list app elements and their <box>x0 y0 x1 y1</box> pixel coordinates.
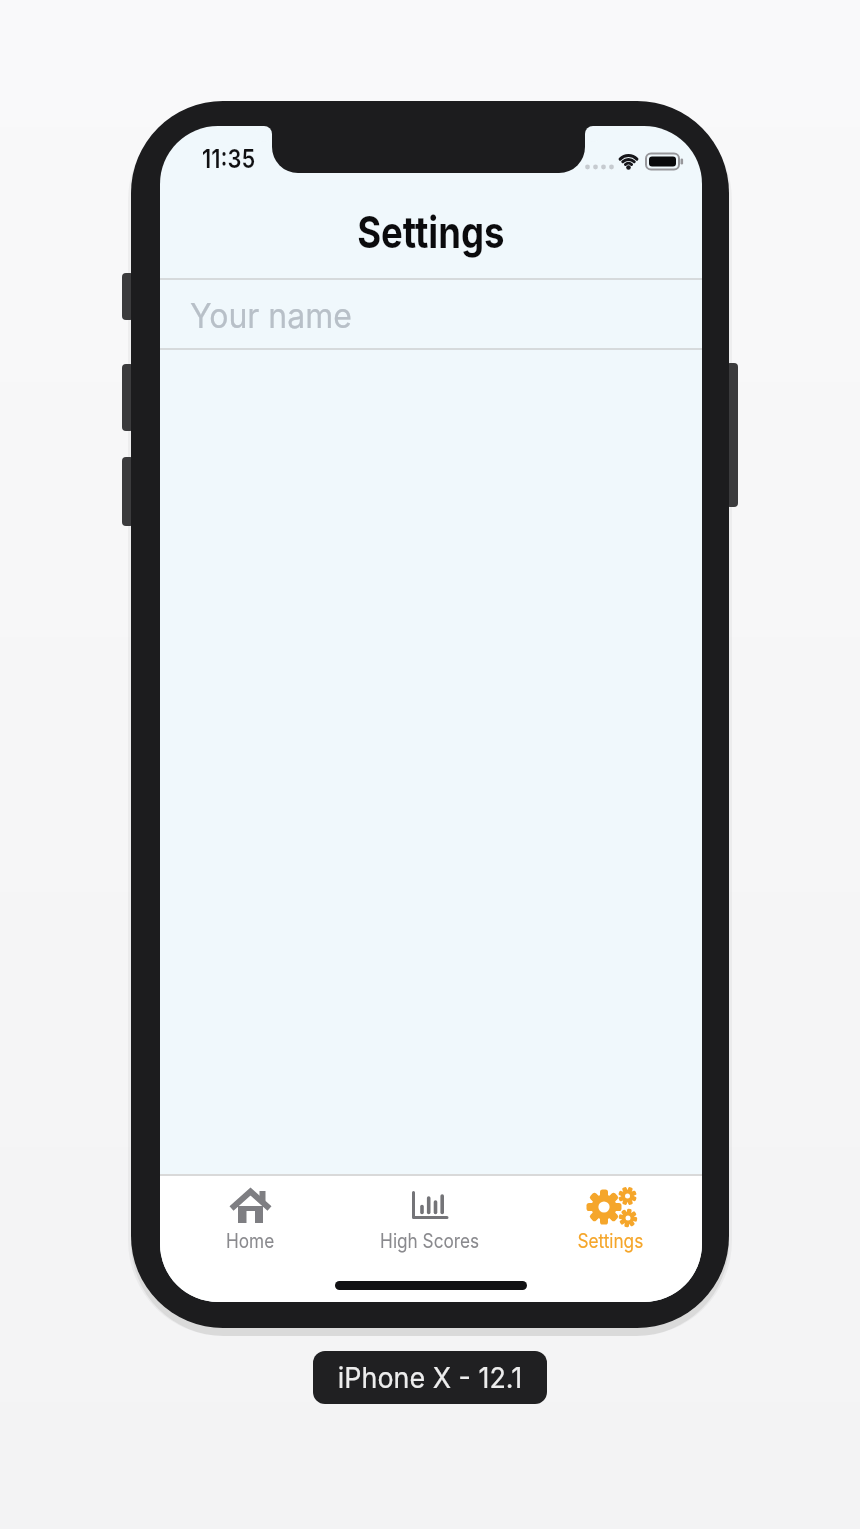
staticText: Home <box>226 1229 275 1253</box>
staticText: Settings <box>577 1229 644 1253</box>
button[interactable]: Settings <box>545 1178 675 1254</box>
staticText: Your name <box>190 295 353 336</box>
button[interactable]: Home <box>185 1178 315 1254</box>
button[interactable]: Your name <box>160 280 702 348</box>
staticText: High Scores <box>380 1229 480 1253</box>
staticText: iPhone X - 12.1 <box>338 1361 522 1395</box>
staticText: 11:35 <box>202 143 256 174</box>
staticText: Settings <box>357 205 505 258</box>
button[interactable]: High Scores <box>356 1178 504 1254</box>
